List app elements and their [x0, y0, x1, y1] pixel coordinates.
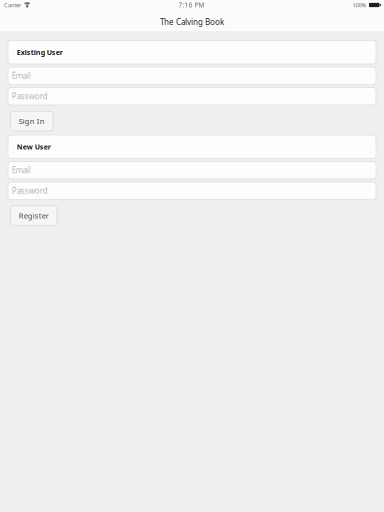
- button[interactable]: Email: [8, 161, 376, 179]
- staticText: Existing User: [17, 47, 63, 57]
- staticText: 7:16 PM: [178, 1, 204, 9]
- staticText: 100%: [352, 1, 366, 9]
- staticText: Register: [19, 210, 49, 221]
- staticText: Email: [12, 70, 31, 81]
- staticText: Carrier: [4, 1, 21, 9]
- staticText: Email: [12, 165, 31, 176]
- staticText: New User: [17, 142, 51, 151]
- button[interactable]: Sign In: [11, 111, 53, 131]
- button[interactable]: Register: [11, 206, 57, 225]
- staticText: Password: [12, 91, 48, 102]
- staticText: Password: [12, 185, 48, 196]
- button[interactable]: Password: [8, 87, 376, 105]
- button[interactable]: Password: [8, 182, 376, 199]
- button[interactable]: Email: [8, 67, 376, 84]
- staticText: Sign In: [19, 116, 45, 126]
- staticText: The Calving Book: [160, 17, 224, 27]
